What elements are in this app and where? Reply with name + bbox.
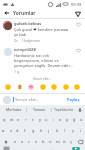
staticText: d xyxy=(16,128,19,133)
staticText: Paylaş xyxy=(67,97,80,102)
staticText: p xyxy=(66,117,69,122)
staticText: 1 g xyxy=(14,69,20,74)
staticText: Merhaba xyxy=(6,107,22,112)
button[interactable]: c xyxy=(26,136,33,147)
staticText: h xyxy=(40,128,43,133)
staticText: s xyxy=(10,128,12,133)
button[interactable]: ecinyeli328 xyxy=(0,45,85,76)
button[interactable]: ç xyxy=(68,136,75,147)
button[interactable]: m xyxy=(54,136,61,147)
staticText: w xyxy=(10,117,14,122)
button[interactable]: Paylaş xyxy=(73,9,82,18)
staticText: u xyxy=(45,117,48,122)
staticText: Yorum ekle... xyxy=(15,97,40,102)
button[interactable]: , xyxy=(12,147,19,150)
staticText: y xyxy=(39,117,41,122)
button[interactable]: s xyxy=(7,125,14,136)
button[interactable]: Beğen xyxy=(75,47,82,54)
button[interactable]: a xyxy=(0,125,7,136)
button[interactable]: Beğen xyxy=(75,21,82,28)
button[interactable]: Emoji xyxy=(4,83,12,91)
staticText: t xyxy=(32,117,34,122)
button[interactable]: k xyxy=(53,125,61,136)
button[interactable]: Emoji xyxy=(50,83,58,91)
staticText: ü xyxy=(80,117,83,122)
button[interactable]: Sayılar xyxy=(1,147,12,150)
button[interactable]: gulsah.bektas xyxy=(0,19,85,45)
staticText: z xyxy=(14,139,16,145)
button[interactable]: z xyxy=(11,136,19,147)
staticText: x xyxy=(21,139,24,145)
staticText: n xyxy=(49,139,52,145)
staticText: Yorum ekle... xyxy=(33,77,52,81)
button[interactable]: Shift xyxy=(0,136,11,147)
button[interactable]: Merhaba xyxy=(2,107,26,112)
button[interactable]: h xyxy=(37,125,45,136)
button[interactable]: Teşekkürler xyxy=(52,107,76,112)
button[interactable]: y xyxy=(36,114,43,125)
button[interactable]: x xyxy=(19,136,26,147)
staticText: r xyxy=(25,117,27,122)
staticText: ç xyxy=(70,139,73,145)
button[interactable]: e xyxy=(15,114,22,125)
button[interactable]: Sesle yaz xyxy=(76,108,83,112)
button[interactable]: ö xyxy=(61,136,68,147)
staticText: k xyxy=(56,128,59,133)
staticText: Teşekkürler xyxy=(54,107,74,112)
staticText: e xyxy=(17,117,20,122)
button[interactable]: j xyxy=(45,125,53,136)
staticText: l xyxy=(64,128,66,133)
button[interactable]: v xyxy=(33,136,40,147)
button[interactable]: b xyxy=(40,136,47,147)
button[interactable]: w xyxy=(8,114,15,125)
button[interactable]: i xyxy=(77,125,85,136)
staticText: Tamam xyxy=(33,107,46,112)
button[interactable]: Emoji xyxy=(62,83,70,91)
staticText: o xyxy=(59,117,62,122)
button[interactable]: Emoji xyxy=(73,83,81,91)
button[interactable]: ğ xyxy=(71,114,78,125)
button[interactable]: ü xyxy=(78,114,85,125)
staticText: a xyxy=(2,128,5,133)
button[interactable]: ı xyxy=(50,114,57,125)
button[interactable]: Gönder xyxy=(67,147,84,150)
staticText: 09:39 xyxy=(71,2,82,7)
button[interactable]: u xyxy=(43,114,50,125)
staticText: v xyxy=(35,139,38,145)
staticText: gulsah.bektas xyxy=(14,21,42,26)
button[interactable]: Emoji xyxy=(16,83,24,91)
button[interactable]: n xyxy=(47,136,54,147)
button[interactable]: r xyxy=(22,114,29,125)
button[interactable]: p xyxy=(64,114,71,125)
button[interactable]: f xyxy=(21,125,29,136)
staticText: j xyxy=(48,128,50,133)
button[interactable]: Emoji xyxy=(39,83,47,91)
button[interactable]: d xyxy=(14,125,21,136)
staticText: ecinyeli328 xyxy=(14,47,36,52)
button[interactable]: o xyxy=(57,114,64,125)
staticText: ş xyxy=(72,128,74,133)
staticText: f xyxy=(24,128,26,133)
staticText: ö xyxy=(63,139,66,145)
button[interactable]: t xyxy=(29,114,36,125)
staticText: Yorumlar xyxy=(13,10,36,17)
button[interactable]: Emoji xyxy=(27,83,35,91)
staticText: Çok guzel ❤️ kendine jsonaaa iyi bak xyxy=(14,27,73,37)
button[interactable]: ş xyxy=(69,125,77,136)
button[interactable]: Tamam xyxy=(27,107,51,112)
staticText: ğ xyxy=(73,117,76,122)
button[interactable]: l xyxy=(61,125,69,136)
staticText: i xyxy=(80,128,82,133)
button[interactable]: g xyxy=(29,125,37,136)
staticText: c xyxy=(28,139,31,145)
staticText: m xyxy=(56,139,60,145)
button[interactable]: Geri xyxy=(3,9,11,17)
button[interactable]: Sil xyxy=(75,136,85,147)
button[interactable]: q xyxy=(0,114,8,125)
staticText: ı xyxy=(53,117,55,122)
staticText: q xyxy=(3,117,6,122)
button[interactable]: Paylaş xyxy=(65,95,82,104)
